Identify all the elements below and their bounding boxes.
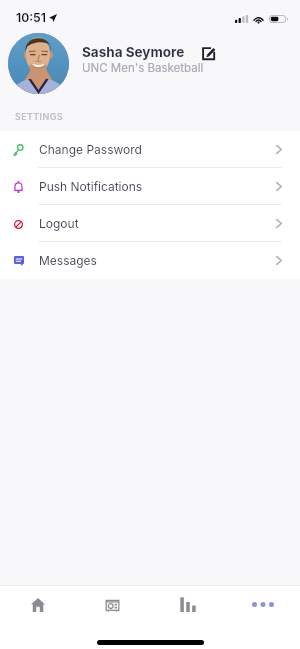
staticText: Messages	[39, 253, 97, 268]
button[interactable]: Lockers	[75, 586, 150, 625]
button[interactable]: Logout	[0, 205, 300, 242]
button[interactable]: Push Notifications	[0, 168, 300, 205]
staticText: Change Password	[39, 142, 142, 157]
button[interactable]: Change Password	[0, 131, 300, 168]
button[interactable]: More	[225, 586, 300, 625]
staticText: SETTINGS	[15, 111, 63, 122]
button[interactable]: Home	[0, 586, 75, 625]
button[interactable]: Edit profile	[197, 42, 220, 65]
staticText: Logout	[39, 216, 79, 231]
staticText: 10:51	[16, 10, 46, 25]
staticText: UNC Men's Basketball	[82, 61, 204, 75]
button[interactable]: Messages	[0, 242, 300, 279]
staticText: Push Notifications	[39, 179, 143, 194]
button[interactable]: Stats	[150, 586, 225, 625]
button[interactable]: Sasha Seymore	[0, 28, 300, 94]
staticText: Sasha Seymore	[82, 44, 185, 60]
